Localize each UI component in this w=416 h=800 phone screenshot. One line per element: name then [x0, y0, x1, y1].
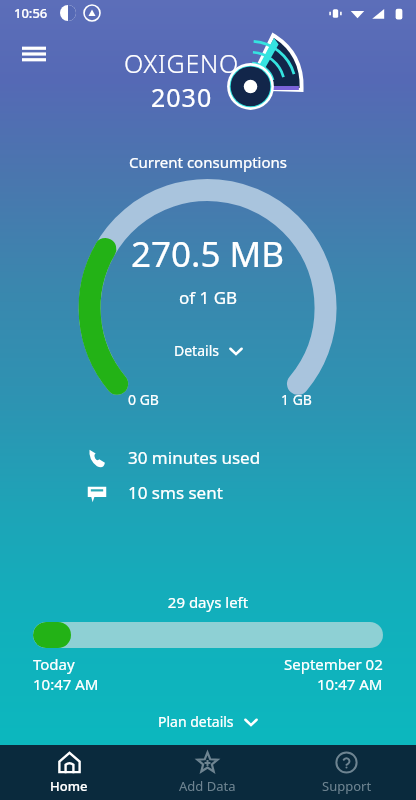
staticText: Support	[322, 777, 372, 795]
staticText: 30 minutes used	[128, 446, 261, 469]
staticText: Home	[50, 777, 88, 795]
staticText: 1 GB	[281, 390, 312, 409]
staticText: Plan details	[158, 712, 234, 731]
staticText: 29 days left	[0, 592, 416, 612]
staticText: September 02	[284, 654, 383, 674]
staticText: Add Data	[179, 777, 236, 795]
staticText: Current consumptions	[0, 152, 416, 172]
staticText: Today	[33, 654, 75, 674]
staticText: 10:47 AM	[317, 674, 383, 694]
button[interactable]: Support	[277, 745, 416, 800]
button[interactable]: 10 sms sent	[86, 481, 400, 504]
staticText: 10:47 AM	[33, 674, 99, 694]
staticText: 2030	[151, 80, 213, 114]
staticText: 10 sms sent	[128, 481, 223, 504]
staticText: 0 GB	[128, 390, 159, 409]
button[interactable]: Plan details	[150, 708, 266, 735]
staticText: Details	[174, 341, 219, 360]
button[interactable]: Add Data	[138, 745, 277, 800]
button[interactable]: Menu	[12, 32, 56, 76]
staticText: 10:56	[14, 4, 48, 22]
button[interactable]: Home	[0, 745, 138, 800]
button[interactable]: 30 minutes used	[86, 446, 400, 469]
staticText: 270.5 MB	[131, 230, 285, 278]
staticText: OXIGENO	[124, 46, 240, 80]
staticText: of 1 GB	[179, 286, 238, 309]
button[interactable]: Details	[166, 337, 251, 364]
